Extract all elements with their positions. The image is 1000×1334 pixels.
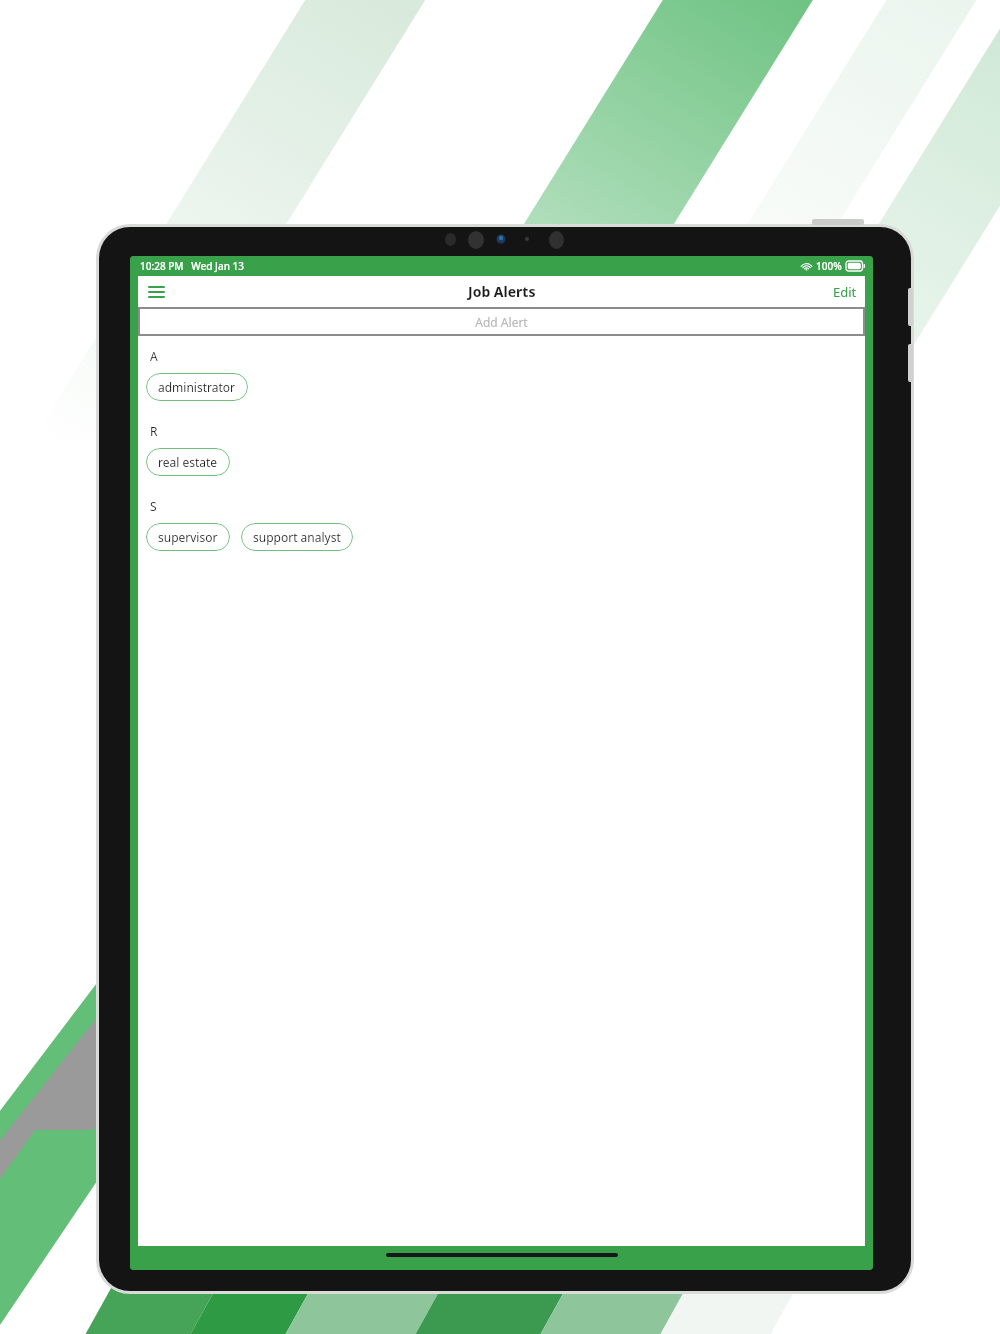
staticText: A <box>150 348 158 364</box>
staticText: administrator <box>158 379 236 395</box>
staticText: R <box>150 423 158 439</box>
staticText: real estate <box>158 454 218 470</box>
button[interactable]: Edit <box>825 276 865 307</box>
staticText: Edit <box>833 283 857 301</box>
staticText: 10:28 PM Wed Jan 13 <box>140 259 244 273</box>
staticText: Job Alerts <box>468 282 536 301</box>
button[interactable]: administrator <box>146 373 248 401</box>
staticText: support analyst <box>253 529 341 545</box>
staticText: S <box>150 498 157 514</box>
button[interactable]: Add Alert <box>138 307 865 336</box>
staticText: supervisor <box>158 529 218 545</box>
staticText: 100% <box>816 259 842 273</box>
button[interactable]: support analyst <box>241 523 353 551</box>
staticText: Add Alert <box>475 314 528 330</box>
button[interactable]: Menu <box>138 276 174 307</box>
button[interactable]: real estate <box>146 448 230 476</box>
button[interactable]: supervisor <box>146 523 230 551</box>
